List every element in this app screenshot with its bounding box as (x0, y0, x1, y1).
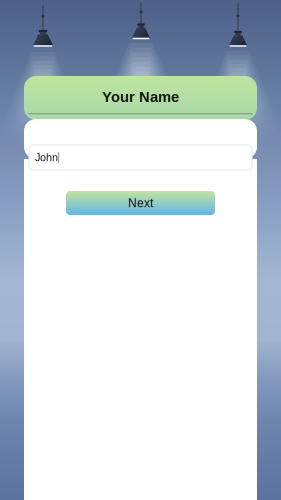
staticText: Your Name (102, 89, 179, 105)
staticText: John (35, 151, 58, 163)
staticText: Next (128, 196, 153, 210)
button[interactable]: Name text field (29, 145, 252, 170)
button[interactable]: Next (66, 191, 215, 215)
